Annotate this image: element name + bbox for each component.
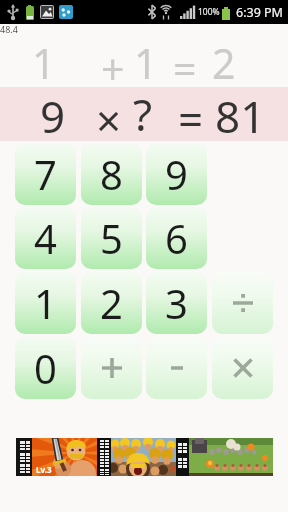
- staticText: 48.4: [0, 23, 18, 33]
- staticText: 9: [165, 147, 188, 201]
- button[interactable]: 1: [15, 272, 76, 334]
- staticText: 7: [34, 147, 57, 201]
- staticText: 6: [165, 211, 188, 265]
- button[interactable]: 4: [15, 207, 76, 269]
- staticText: 1: [134, 35, 158, 91]
- button[interactable]: 3: [146, 272, 207, 334]
- staticText: Lv.3: [36, 464, 52, 475]
- staticText: 8: [100, 147, 123, 201]
- staticText: 1: [34, 276, 57, 330]
- staticText: 81: [215, 86, 266, 146]
- staticText: 4: [34, 211, 57, 265]
- staticText: 2: [212, 35, 236, 91]
- staticText: ?: [133, 84, 153, 144]
- button[interactable]: [212, 272, 273, 334]
- button[interactable]: 0: [15, 337, 76, 399]
- staticText: =: [173, 40, 197, 96]
- staticText: 100%: [198, 6, 220, 18]
- button[interactable]: Lv.3: [16, 438, 273, 476]
- button[interactable]: 6: [146, 207, 207, 269]
- staticText: 0: [34, 341, 57, 395]
- staticText: ×: [96, 90, 122, 150]
- staticText: 5: [100, 211, 123, 265]
- button[interactable]: 8: [81, 143, 142, 205]
- staticText: +: [101, 41, 125, 97]
- button[interactable]: 9: [146, 143, 207, 205]
- button[interactable]: 5: [81, 207, 142, 269]
- staticText: 3: [165, 276, 188, 330]
- staticText: 9: [40, 86, 66, 146]
- staticText: 1: [32, 35, 56, 91]
- button[interactable]: [146, 337, 207, 399]
- staticText: 2: [100, 276, 123, 330]
- button[interactable]: [81, 337, 142, 399]
- staticText: 6:39 PM: [236, 4, 283, 21]
- button[interactable]: 7: [15, 143, 76, 205]
- button[interactable]: 2: [81, 272, 142, 334]
- staticText: =: [178, 89, 204, 149]
- button[interactable]: [212, 337, 273, 399]
